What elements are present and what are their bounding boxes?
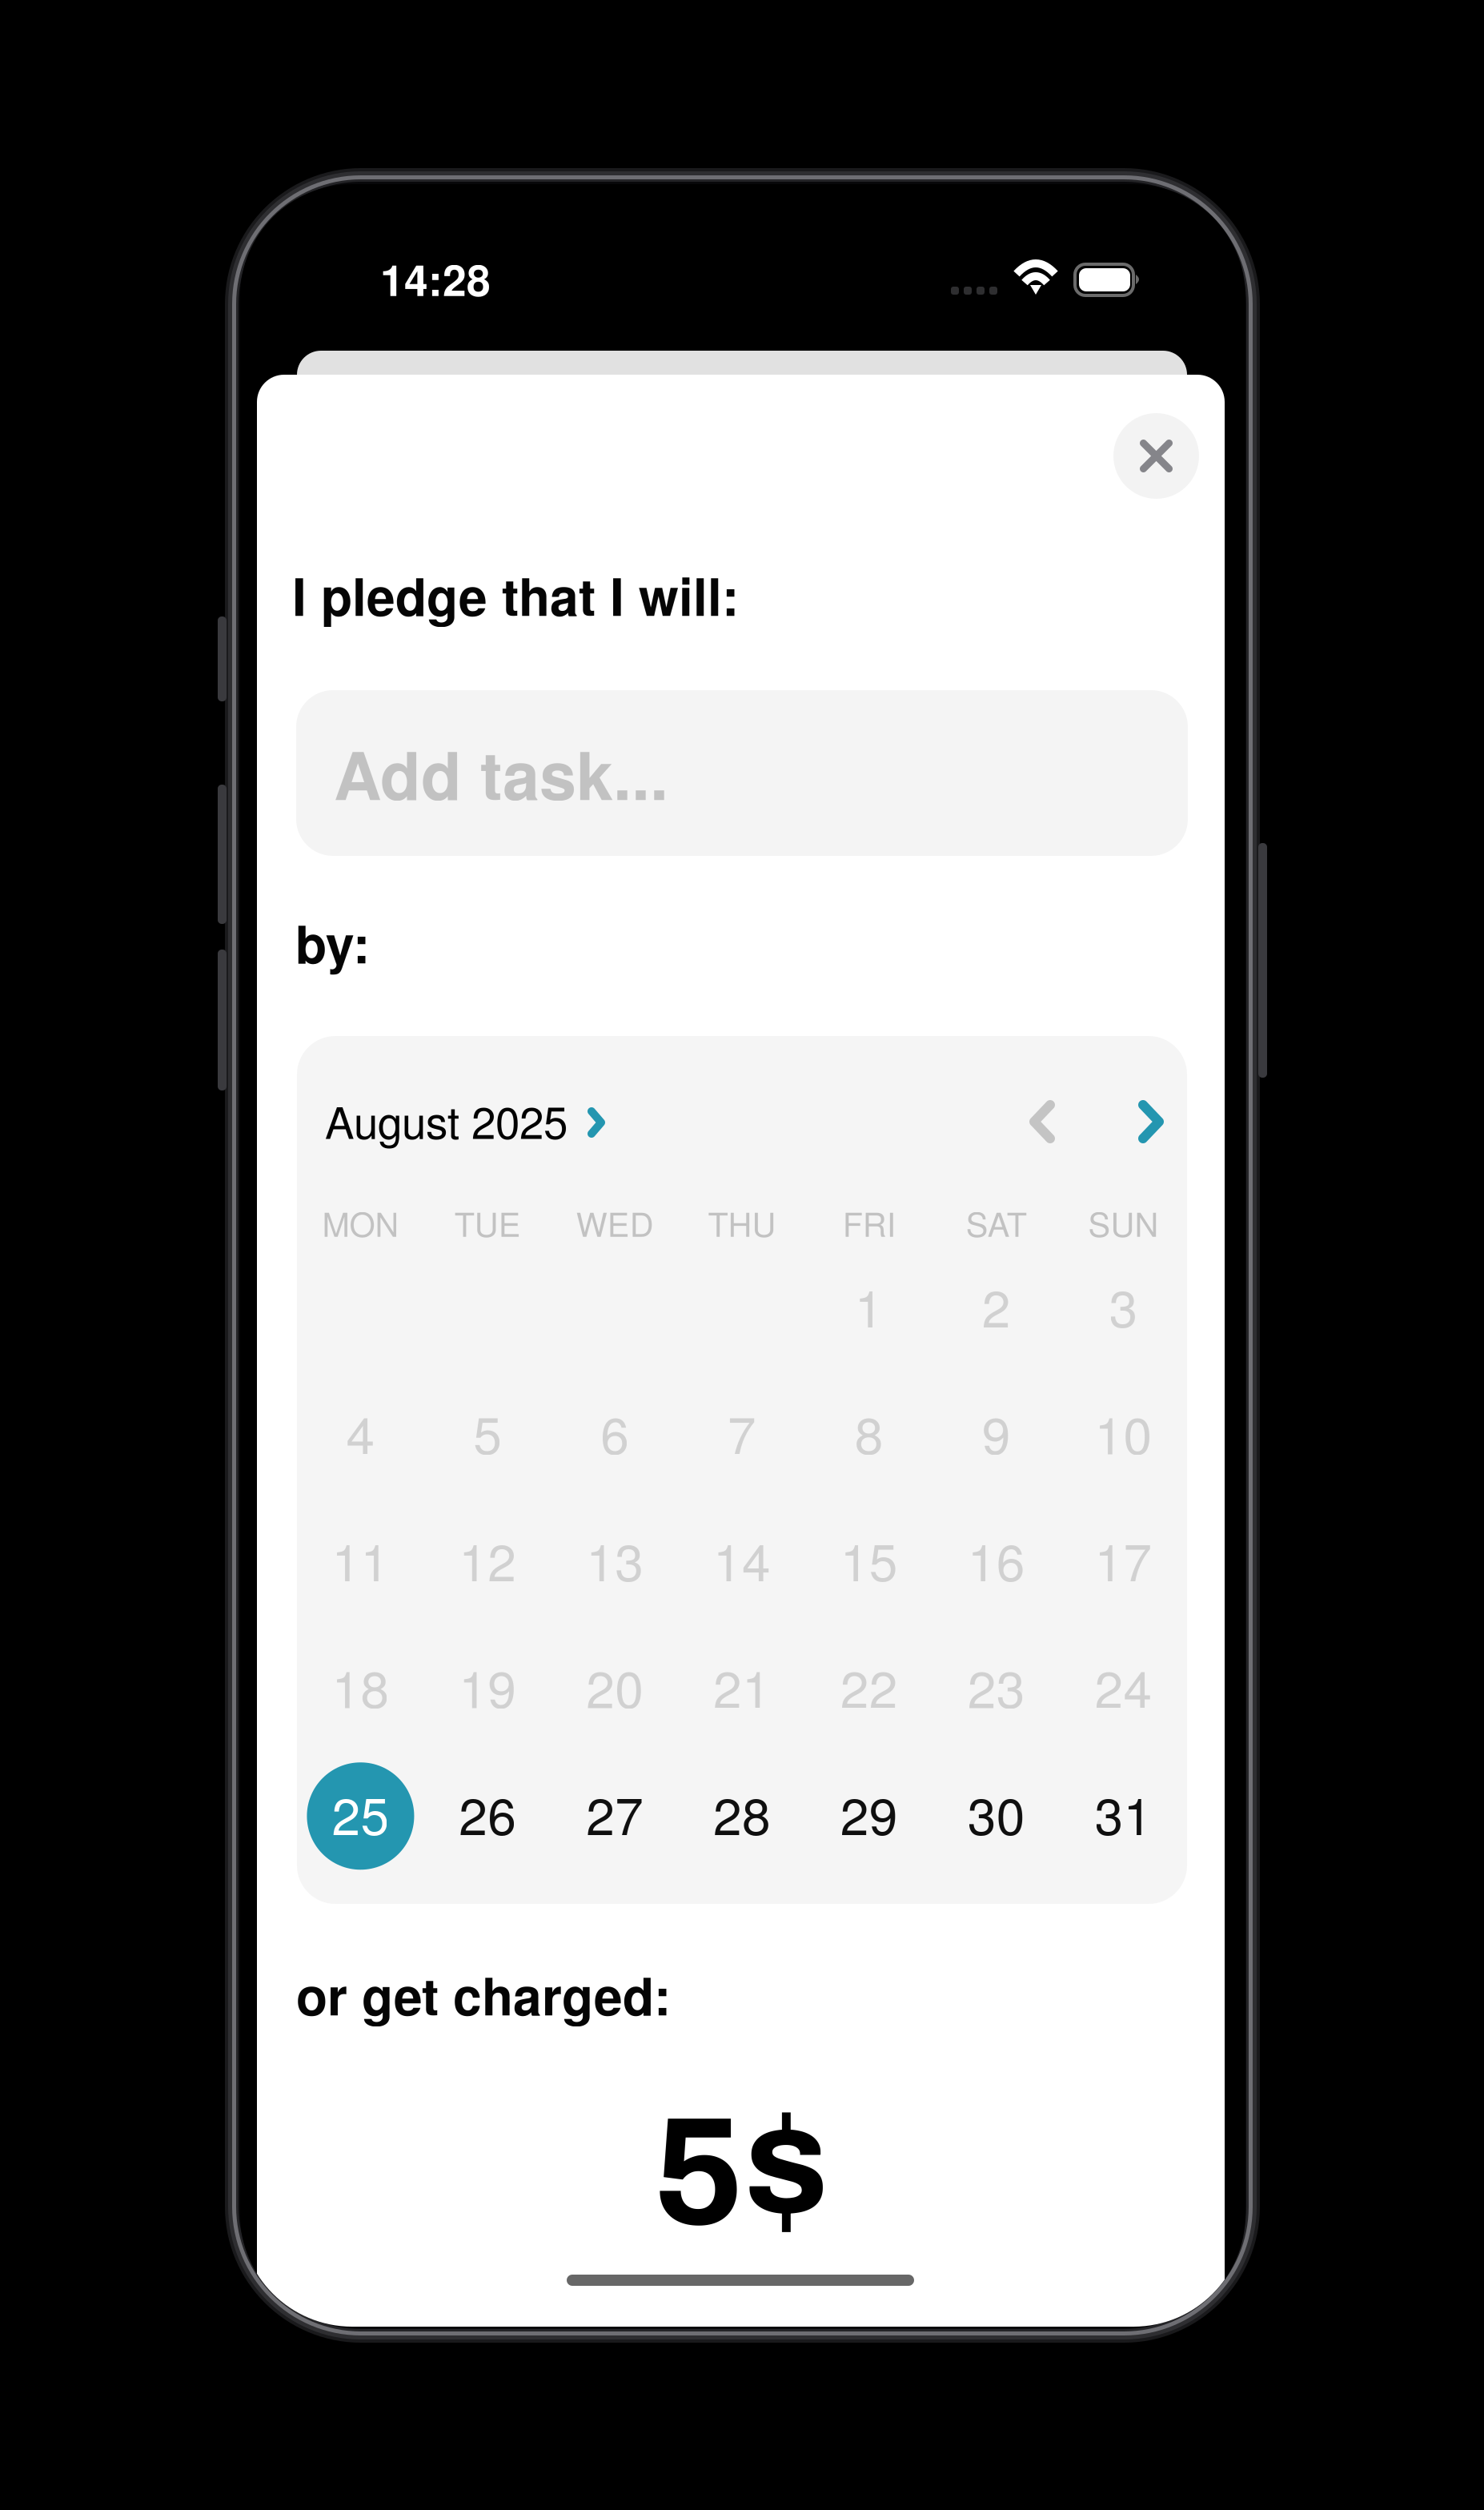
staticText: by: [295,906,370,979]
staticText: 5$ [653,2090,828,2256]
staticText: 18 [332,1649,389,1723]
staticText: SAT [966,1199,1027,1246]
staticText: 21 [713,1649,771,1723]
staticText: 3 [1109,1269,1138,1342]
button[interactable]: Add task... [296,690,1188,856]
staticText: 8 [855,1395,884,1469]
staticText: 30 [967,1776,1025,1849]
staticText: 29 [840,1776,898,1849]
staticText: FRI [843,1199,896,1246]
staticText: 22 [840,1649,898,1723]
staticText: 6 [600,1395,629,1469]
staticText: or get charged: [296,1958,671,2031]
staticText: 15 [840,1522,898,1596]
staticText: 19 [459,1649,517,1723]
button[interactable]: Next month [1115,1086,1187,1158]
staticText: 31 [1095,1776,1152,1849]
staticText: 14 [713,1522,771,1596]
staticText: 17 [1095,1522,1152,1596]
staticText: 10 [1095,1395,1152,1469]
staticText: 20 [586,1649,644,1723]
staticText: 4 [346,1395,375,1469]
staticText: 16 [967,1522,1025,1596]
staticText: 7 [728,1395,756,1469]
staticText: 12 [459,1522,517,1596]
staticText: 9 [982,1395,1011,1469]
staticText: MON [322,1199,399,1246]
staticText: Add task... [334,726,668,820]
staticText: 14:28 [380,248,491,309]
button[interactable]: Close [1113,413,1199,499]
staticText: 5 [473,1395,502,1469]
staticText: TUE [454,1199,521,1246]
staticText: 2 [982,1269,1011,1342]
staticText: 23 [967,1649,1025,1723]
staticText: 26 [459,1776,517,1849]
button[interactable]: Previous month [1006,1086,1078,1158]
staticText: 28 [713,1776,771,1849]
staticText: 11 [332,1522,389,1596]
staticText: I pledge that I will: [292,558,739,632]
staticText: THU [708,1199,776,1246]
staticText: August 2025 [325,1089,568,1151]
staticText: WED [576,1199,654,1246]
staticText: 13 [586,1522,644,1596]
staticText: 1 [855,1269,884,1342]
staticText: SUN [1088,1199,1159,1246]
staticText: 27 [586,1776,644,1849]
staticText: 25 [332,1776,389,1849]
staticText: 24 [1095,1649,1152,1723]
